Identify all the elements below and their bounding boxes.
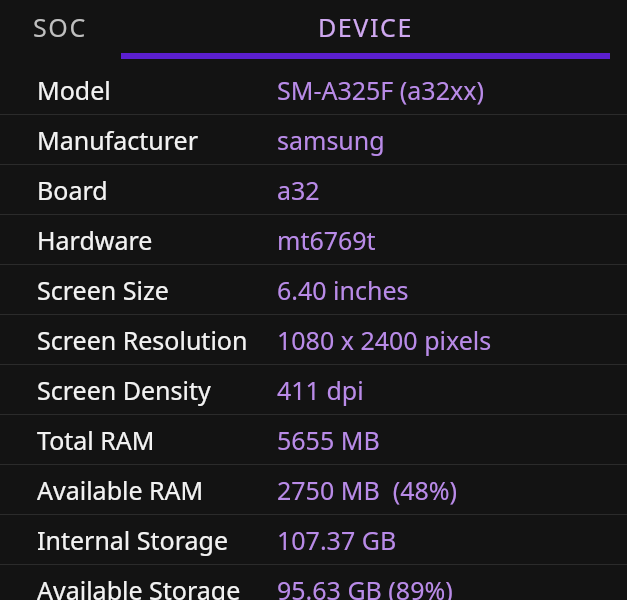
staticText: Available RAM (37, 473, 204, 507)
staticText: Screen Size (37, 273, 169, 307)
staticText: 95.63 GB (89%) (277, 573, 453, 600)
button[interactable]: Board (0, 165, 627, 214)
staticText: 411 dpi (277, 373, 364, 407)
button[interactable]: Hardware (0, 215, 627, 264)
button[interactable]: Model (0, 65, 627, 114)
staticText: Screen Resolution (37, 323, 248, 357)
button[interactable]: Manufacturer (0, 115, 627, 164)
button[interactable]: Available RAM (0, 465, 627, 514)
staticText: 2750 MB (48%) (277, 473, 458, 507)
button[interactable]: Total RAM (0, 415, 627, 464)
staticText: Screen Density (37, 373, 211, 407)
button[interactable]: Internal Storage (0, 515, 627, 564)
staticText: Hardware (37, 223, 153, 257)
staticText: Available Storage (37, 573, 241, 600)
staticText: Manufacturer (37, 123, 198, 157)
staticText: 1080 x 2400 pixels (277, 323, 492, 357)
button[interactable]: Screen Density (0, 365, 627, 414)
staticText: Internal Storage (37, 523, 229, 557)
staticText: samsung (277, 123, 385, 157)
staticText: DEVICE (318, 10, 413, 44)
staticText: 6.40 inches (277, 273, 409, 307)
staticText: 5655 MB (277, 423, 380, 457)
staticText: Board (37, 173, 108, 207)
button[interactable]: Available Storage (0, 565, 627, 600)
staticText: SM-A325F (a32xx) (277, 73, 484, 107)
staticText: Total RAM (37, 423, 155, 457)
button[interactable]: Screen Size (0, 265, 627, 314)
button[interactable]: Screen Resolution (0, 315, 627, 364)
staticText: 107.37 GB (277, 523, 397, 557)
staticText: SOC (33, 10, 87, 44)
button[interactable]: DEVICE (104, 0, 627, 59)
staticText: Model (37, 73, 111, 107)
staticText: mt6769t (277, 223, 376, 257)
button[interactable]: SOC (33, 0, 104, 53)
staticText: a32 (277, 173, 320, 207)
